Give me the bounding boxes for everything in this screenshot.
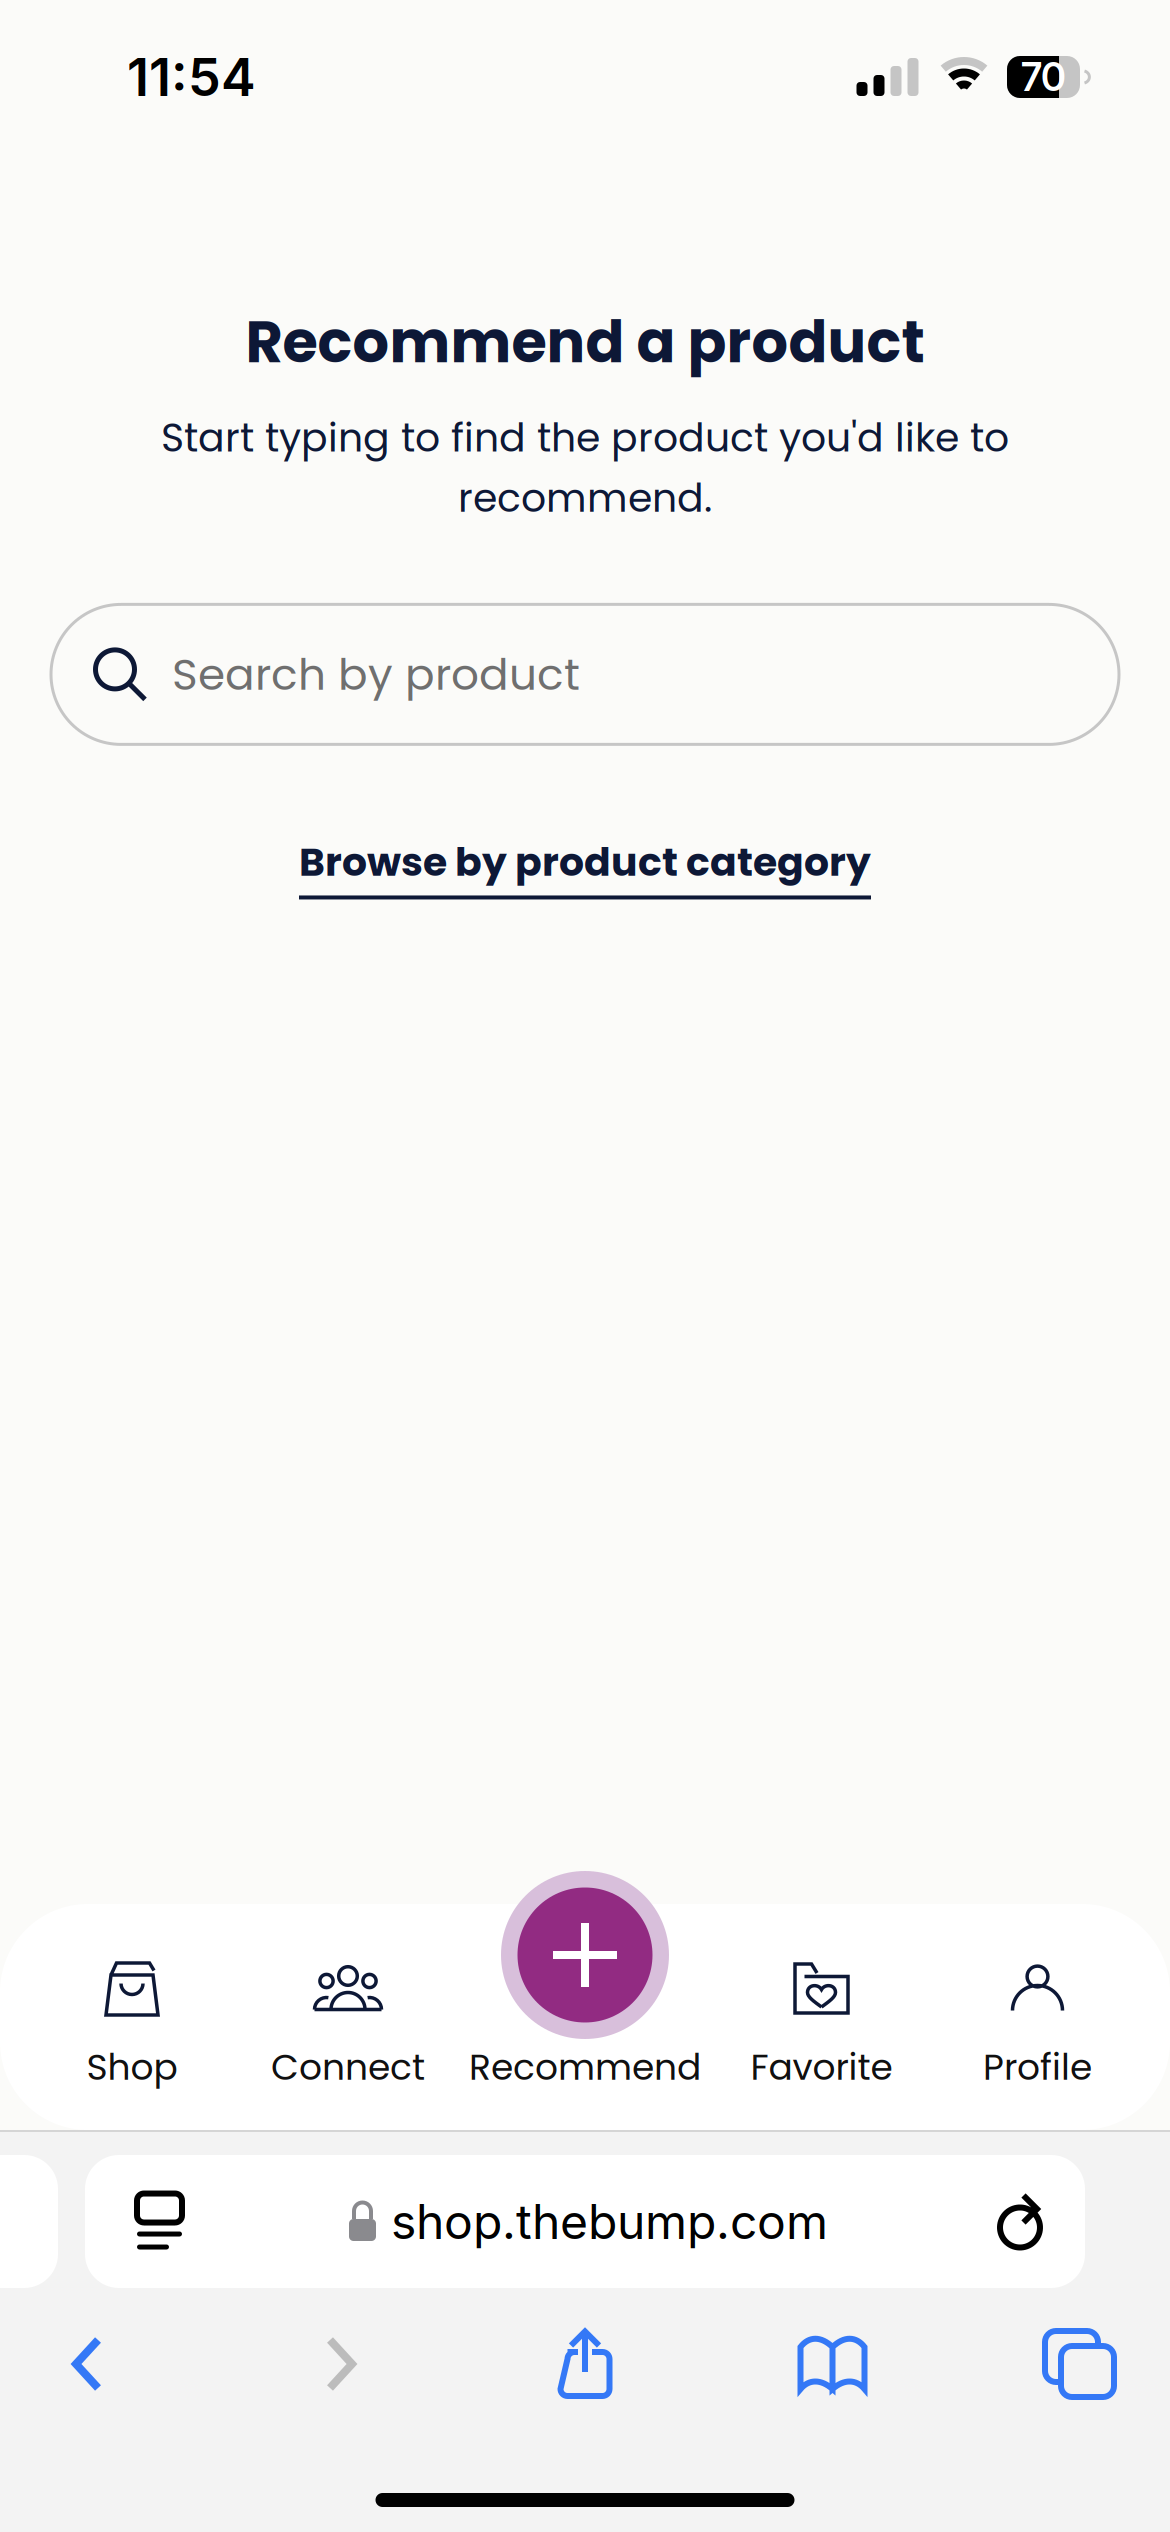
staticText: Browse by product category [299, 834, 871, 889]
staticText: recommend. [458, 470, 712, 525]
staticText: Favorite [750, 2042, 892, 2092]
button[interactable]: Recommend [432, 1904, 738, 2130]
button[interactable]: Share [508, 2314, 662, 2414]
staticText: Shop [86, 2042, 177, 2092]
staticText: Profile [983, 2042, 1092, 2092]
staticText: 70 [1021, 54, 1066, 100]
staticText: Search by product [172, 644, 580, 705]
button[interactable]: Back [0, 2314, 174, 2414]
button[interactable]: Favorite [738, 1904, 905, 2130]
button[interactable]: Bookmarks [662, 2314, 1003, 2414]
staticText: shop.thebump.com [391, 2192, 828, 2251]
button[interactable]: Forward [174, 2314, 508, 2414]
button[interactable]: Browse by product category [299, 834, 871, 899]
button[interactable]: Shop [0, 1904, 264, 2130]
staticText: Recommend a product [245, 302, 924, 382]
staticText: Connect [271, 2042, 425, 2092]
staticText: Start typing to find the product you'd l… [161, 410, 1009, 465]
staticText: 11:54 [127, 45, 256, 108]
button[interactable]: Search by product [51, 604, 1119, 744]
staticText: Recommend [469, 2042, 701, 2092]
button[interactable]: Profile [905, 1904, 1170, 2130]
button[interactable]: Connect [264, 1904, 432, 2130]
button[interactable]: Reload [789, 2155, 1085, 2288]
button[interactable]: Tabs [1003, 2314, 1156, 2414]
button[interactable]: Recommend [501, 1871, 669, 2039]
button[interactable]: Page settings [85, 2155, 349, 2288]
button[interactable]: shop.thebump.com [349, 2155, 789, 2288]
